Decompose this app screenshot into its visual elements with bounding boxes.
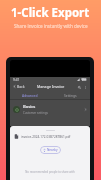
staticText: Share invoice instantly with device: [14, 23, 88, 29]
button[interactable]: More options: [82, 84, 88, 90]
staticText: Basics: [23, 104, 36, 110]
staticText: Nearby: [47, 148, 58, 152]
button[interactable]: Search: [76, 84, 82, 90]
staticText: invoice-2024-172-03B7287B61.pdf: [21, 135, 71, 139]
staticText: 9:41: [13, 78, 20, 82]
button[interactable]: Nearby: [40, 146, 61, 154]
button[interactable]: Back: [12, 82, 26, 91]
staticText: 1-Click Export: [11, 5, 90, 21]
staticText: Advanced: [22, 93, 38, 97]
button[interactable]: Basics: [10, 100, 90, 118]
staticText: Customer settings: [23, 111, 48, 115]
button[interactable]: Settings: [50, 91, 90, 99]
staticText: Settings: [64, 93, 77, 97]
button[interactable]: Advanced: [10, 91, 50, 99]
staticText: Manage Invoice: [37, 84, 65, 89]
staticText: Back: [17, 84, 25, 89]
staticText: No recommended people to share with: [25, 170, 75, 174]
